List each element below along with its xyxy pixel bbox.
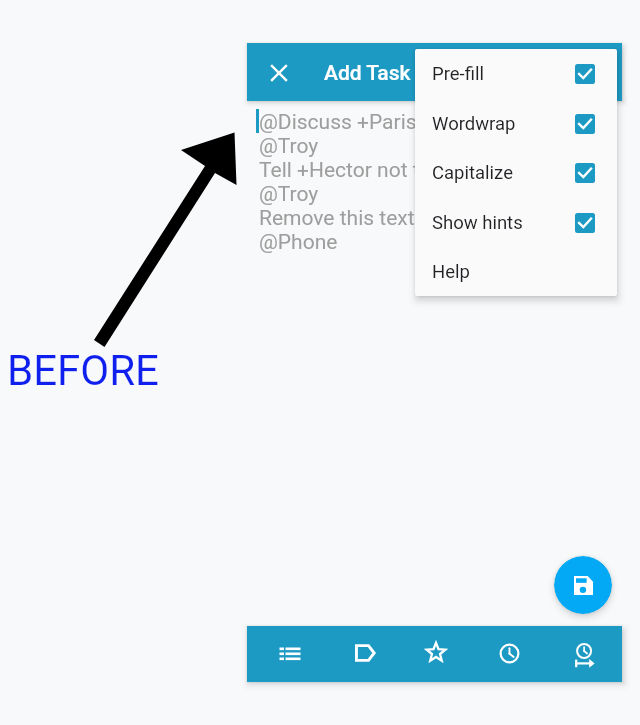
button[interactable]: Pre-fill <box>415 49 617 98</box>
staticText: Wordwrap <box>432 113 516 135</box>
button[interactable]: Starred <box>398 626 473 682</box>
staticText: @Phone <box>259 230 338 254</box>
button[interactable]: Duration <box>547 626 622 682</box>
button[interactable]: Capitalize <box>415 148 617 197</box>
button[interactable]: Tags <box>327 626 402 682</box>
button[interactable]: Wordwrap <box>415 99 617 148</box>
staticText: Tell +Hector not to forget <box>259 158 493 182</box>
staticText: @Discuss +Paris trip <box>259 110 453 134</box>
button[interactable]: Show hints <box>415 198 617 247</box>
button[interactable]: Help <box>415 247 617 296</box>
staticText: @Troy <box>259 182 319 206</box>
button[interactable]: Close <box>255 49 303 97</box>
staticText: BEFORE <box>7 346 159 395</box>
staticText: Capitalize <box>432 162 513 184</box>
button[interactable]: Save <box>554 556 612 614</box>
staticText: Show hints <box>432 212 523 234</box>
staticText: Add Task <box>324 61 411 86</box>
staticText: Help <box>432 261 470 283</box>
button[interactable]: Recent <box>472 626 547 682</box>
staticText: @Troy <box>259 134 319 158</box>
staticText: Pre-fill <box>432 63 484 85</box>
staticText: Remove this text to start <box>259 206 488 230</box>
button[interactable]: Lists <box>252 626 327 682</box>
